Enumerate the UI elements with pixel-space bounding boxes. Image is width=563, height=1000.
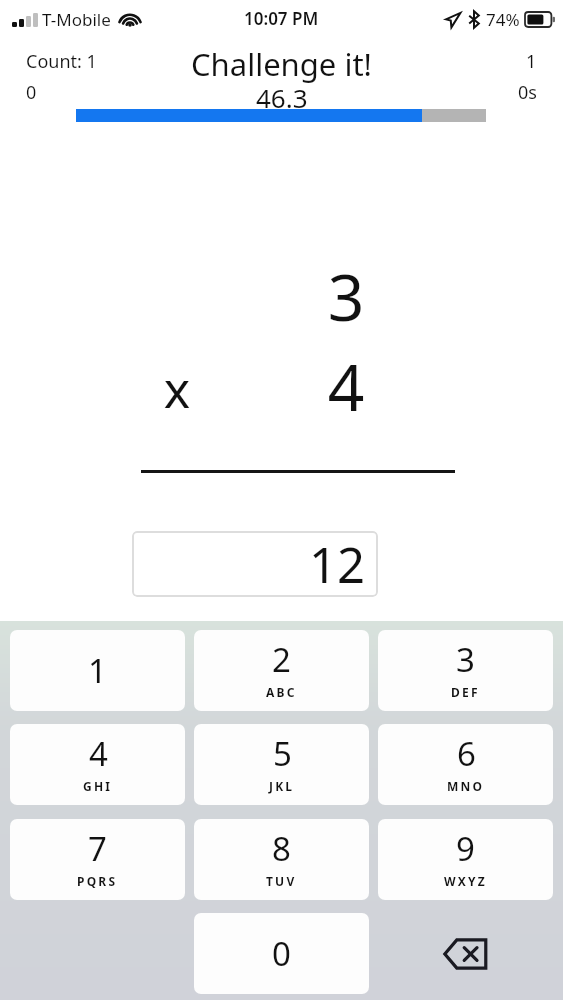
staticText: 9	[456, 826, 475, 871]
staticText: 2	[272, 637, 291, 682]
staticText: GHI	[83, 778, 113, 794]
staticText: T-Mobile	[42, 8, 111, 31]
staticText: 7	[88, 826, 107, 871]
button[interactable]: 12	[132, 531, 378, 597]
button[interactable]: 7	[10, 819, 185, 900]
staticText: 74%	[486, 8, 520, 31]
staticText: 1	[88, 648, 107, 693]
staticText: 46.3	[256, 80, 308, 115]
staticText: MNO	[447, 778, 485, 794]
staticText: x	[156, 355, 198, 423]
button[interactable]: 3	[378, 630, 553, 711]
staticText: 1	[526, 49, 537, 74]
staticText: DEF	[451, 684, 480, 700]
staticText: ABC	[266, 684, 297, 700]
button[interactable]: 8	[194, 819, 369, 900]
staticText: 3	[325, 253, 367, 340]
button[interactable]: 5	[194, 724, 369, 805]
staticText: 5	[273, 731, 292, 776]
button[interactable]: 4	[10, 724, 185, 805]
button[interactable]: 1	[10, 630, 185, 711]
staticText: 4	[325, 343, 367, 430]
staticText: 12	[309, 531, 366, 597]
button[interactable]: 2	[194, 630, 369, 711]
staticText: 3	[456, 637, 475, 682]
button[interactable]: 9	[378, 819, 553, 900]
staticText: 8	[272, 826, 291, 871]
staticText: 0	[272, 931, 291, 976]
button[interactable]: 0	[194, 913, 369, 994]
button[interactable]: 6	[378, 724, 553, 805]
staticText: Challenge it!	[191, 43, 372, 85]
staticText: PQRS	[77, 873, 118, 889]
staticText: 10:07 PM	[244, 7, 319, 30]
button[interactable]: Backspace	[378, 913, 553, 994]
staticText: TUV	[266, 873, 297, 889]
staticText: 4	[89, 731, 108, 776]
staticText: Count: 1	[26, 49, 97, 74]
staticText: 0	[26, 80, 37, 105]
staticText: WXYZ	[444, 873, 487, 889]
staticText: 6	[457, 731, 476, 776]
staticText: 0s	[518, 80, 537, 105]
staticText: JKL	[269, 778, 295, 794]
